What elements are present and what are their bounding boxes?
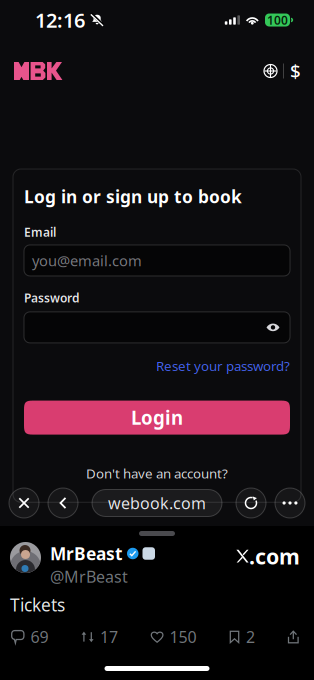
staticText: Don't have an account?: [86, 465, 228, 482]
button[interactable]: 69: [11, 626, 49, 647]
staticText: 100: [267, 12, 288, 28]
staticText: Tickets: [10, 593, 65, 616]
staticText: Login: [131, 405, 183, 430]
staticText: Email: [24, 224, 56, 240]
staticText: Log in or sign up to book: [24, 185, 242, 208]
staticText: .com: [249, 542, 300, 570]
staticText: 12:16: [35, 7, 85, 33]
staticText: @MrBeast: [50, 566, 128, 587]
staticText: webook.com: [108, 492, 206, 514]
staticText: 150: [170, 626, 197, 647]
staticText: MrBeast: [50, 542, 123, 565]
staticText: you@email.com: [32, 251, 142, 270]
staticText: $: [290, 59, 301, 83]
staticText: 69: [31, 626, 49, 647]
button[interactable]: Reset your password?: [156, 357, 290, 375]
button[interactable]: Login: [24, 401, 290, 435]
button[interactable]: 17: [81, 626, 118, 647]
button[interactable]: 150: [151, 626, 197, 647]
button[interactable]: Close: [9, 488, 39, 518]
button[interactable]: Reload: [236, 488, 266, 518]
staticText: Password: [24, 290, 80, 306]
staticText: 17: [100, 626, 118, 647]
staticText: Reset your password?: [156, 357, 290, 375]
staticText: 2: [246, 626, 255, 647]
button[interactable]: Back: [48, 488, 78, 518]
button[interactable]: Don't have an account?: [86, 465, 228, 482]
button[interactable]: 2: [229, 626, 255, 647]
button[interactable]: Share: [288, 630, 299, 643]
button[interactable]: webook.com: [92, 489, 222, 516]
button[interactable]: Language: [264, 64, 277, 77]
button[interactable]: More: [275, 488, 305, 518]
button[interactable]: Currency: [290, 59, 301, 83]
button[interactable]: webook: [14, 62, 62, 80]
